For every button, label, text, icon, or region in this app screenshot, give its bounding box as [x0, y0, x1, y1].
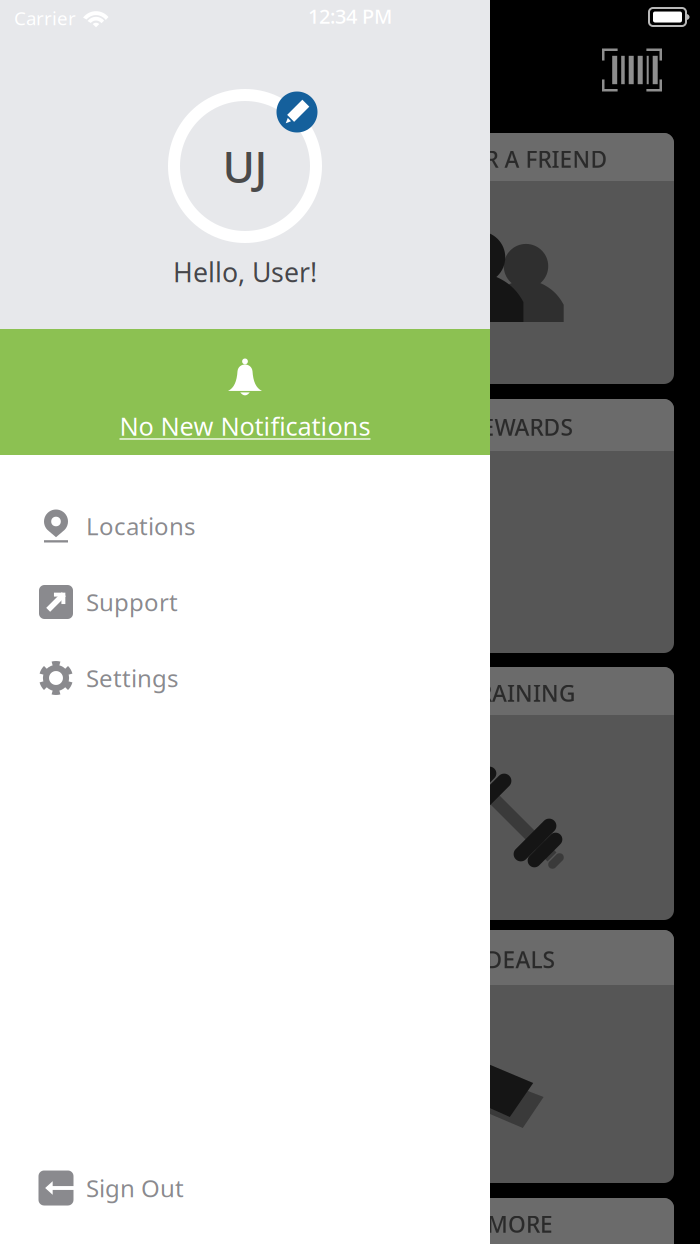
button[interactable]: Scan barcode	[589, 35, 675, 105]
staticText: Settings	[86, 662, 178, 694]
button[interactable]: No New Notifications	[0, 329, 490, 455]
staticText: REWARDS	[467, 412, 572, 442]
staticText: MORE	[487, 1209, 553, 1239]
button[interactable]: Support	[0, 574, 490, 630]
staticText: Sign Out	[86, 1172, 184, 1204]
button[interactable]: Settings	[0, 650, 490, 706]
button[interactable]: Sign Out	[0, 1160, 490, 1216]
staticText: Locations	[86, 510, 195, 542]
button[interactable]: Locations	[0, 498, 490, 554]
staticText: No New Notifications	[119, 409, 370, 443]
staticText: DEALS	[485, 944, 554, 974]
staticText: Support	[86, 586, 178, 618]
staticText: UJ	[222, 137, 267, 195]
staticText: 12:34 PM	[308, 3, 392, 29]
staticText: Carrier	[14, 6, 76, 30]
staticText: REFER A FRIEND	[432, 144, 607, 174]
staticText: Hello, User!	[173, 254, 317, 290]
button[interactable]: Edit profile	[276, 91, 317, 132]
staticText: TRAINING	[465, 678, 575, 708]
